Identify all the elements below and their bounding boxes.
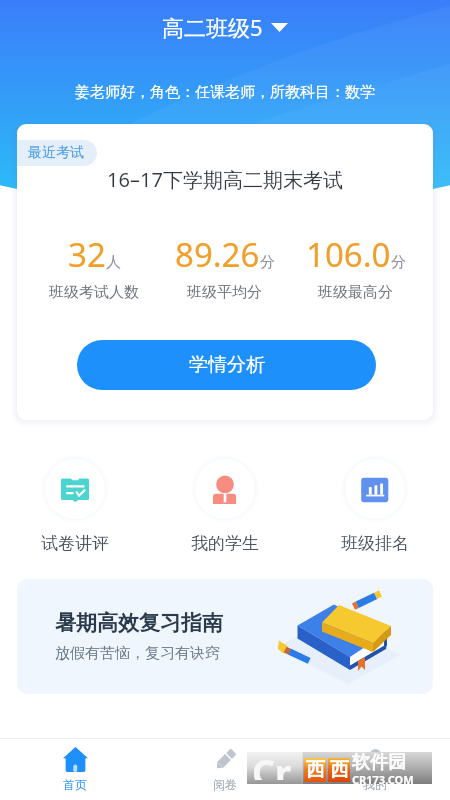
staticText: 放假有苦恼，复习有诀窍 <box>55 644 220 663</box>
button[interactable]: 首页 <box>0 739 150 800</box>
staticText: 班级排名 <box>341 533 409 554</box>
staticText: 16–17下学期高二期末考试 <box>17 166 433 193</box>
staticText: 姜老师好，角色：任课老师，所教科目：数学 <box>0 83 450 102</box>
staticText: 我的学生 <box>191 533 259 554</box>
staticText: 学情分析 <box>189 353 265 377</box>
button[interactable]: 我的学生 <box>150 459 300 554</box>
staticText: 软件园 <box>352 751 406 774</box>
button[interactable]: 暑期高效复习指南 <box>17 579 433 694</box>
staticText: 我的 <box>363 777 387 792</box>
staticText: 暑期高效复习指南 <box>55 610 223 636</box>
staticText: 西 <box>306 758 325 782</box>
staticText: CR173.COM <box>352 772 414 787</box>
button[interactable]: 班级排名 <box>300 459 450 554</box>
staticText: 班级最高分 <box>318 283 393 302</box>
button[interactable]: 高二班级5 <box>152 6 298 48</box>
staticText: 分 <box>260 253 275 272</box>
staticText: 班级考试人数 <box>49 283 139 302</box>
staticText: 西 <box>330 758 349 782</box>
staticText: 试卷讲评 <box>41 533 109 554</box>
button[interactable]: 试卷讲评 <box>0 459 150 554</box>
staticText: 人 <box>106 253 121 272</box>
staticText: 最近考试 <box>28 144 84 162</box>
button[interactable]: 阅卷 <box>150 739 300 800</box>
staticText: 班级平均分 <box>187 283 262 302</box>
staticText: 分 <box>391 253 406 272</box>
staticText: 首页 <box>63 777 87 792</box>
staticText: Cr <box>252 748 292 780</box>
staticText: 106.0 <box>306 232 391 277</box>
staticText: 32 <box>68 232 106 277</box>
staticText: 89.26 <box>175 232 260 277</box>
staticText: 阅卷 <box>213 777 237 792</box>
button[interactable]: 我的 <box>300 739 450 800</box>
staticText: 高二班级5 <box>162 12 263 42</box>
button[interactable]: 学情分析 <box>77 340 376 390</box>
